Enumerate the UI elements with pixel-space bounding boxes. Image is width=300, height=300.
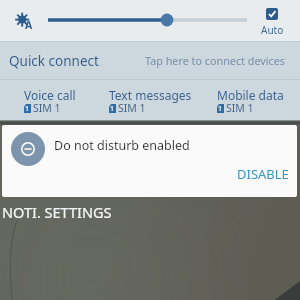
button[interactable]: Brightness <box>42 6 254 34</box>
staticText: Tap here to connect devices <box>145 53 286 68</box>
staticText: DISABLE <box>237 165 289 183</box>
staticText: 1 <box>218 104 223 113</box>
staticText: Auto <box>261 23 284 37</box>
button[interactable]: Auto brightness <box>10 6 38 34</box>
button[interactable]: Text messages <box>100 87 200 120</box>
button[interactable]: Mobile data <box>200 87 300 120</box>
staticText: A <box>25 18 33 32</box>
button[interactable]: Auto <box>256 3 288 37</box>
staticText: 1 <box>110 104 115 113</box>
button[interactable]: NOTI. SETTINGS <box>0 199 116 221</box>
button[interactable]: Voice call <box>0 87 100 120</box>
staticText: Voice call <box>24 87 76 103</box>
staticText: Do not disturb enabled <box>54 137 190 154</box>
staticText: NOTI. SETTINGS <box>2 202 112 222</box>
staticText: SIM 1 <box>118 101 146 115</box>
staticText: 1 <box>25 104 30 113</box>
staticText: Mobile data <box>217 87 284 103</box>
staticText: SIM 1 <box>33 101 61 115</box>
staticText: Text messages <box>109 87 192 103</box>
button[interactable]: DISABLE <box>228 157 297 190</box>
button[interactable]: Quick connect <box>0 42 300 79</box>
staticText: Quick connect <box>9 52 99 70</box>
staticText: SIM 1 <box>226 101 254 115</box>
button[interactable]: Do not disturb enabled <box>2 125 297 197</box>
